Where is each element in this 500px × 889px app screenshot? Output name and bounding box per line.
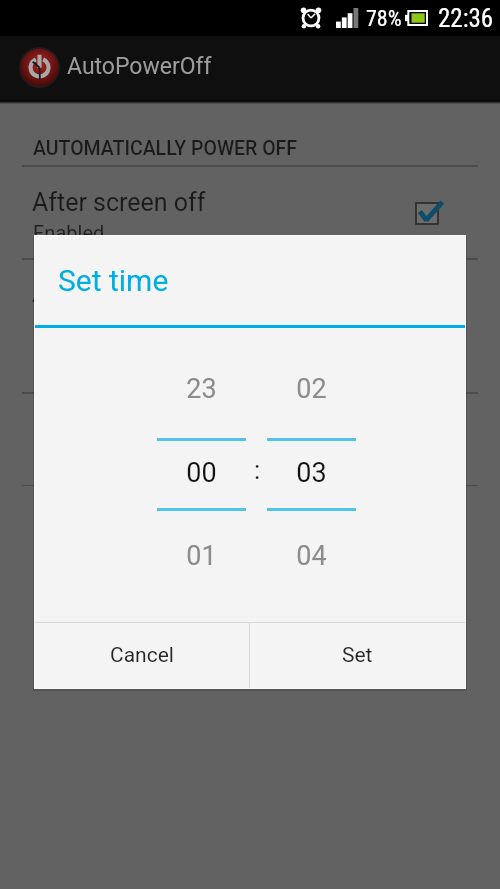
button[interactable]: After screen off enabled — [405, 189, 453, 237]
staticText: 02 — [267, 373, 356, 405]
staticText: Cancel — [110, 643, 174, 668]
button[interactable]: After screen off — [0, 167, 500, 258]
staticText: AutoPowerOff — [67, 53, 212, 80]
staticText: : — [254, 455, 261, 485]
staticText: 00 — [157, 457, 246, 489]
staticText: 04 — [267, 540, 356, 572]
button[interactable]: After screen off delay — [0, 260, 500, 392]
staticText: After screen off — [32, 188, 206, 217]
staticText: AUTOMATICALLY POWER OFF — [33, 137, 298, 160]
staticText: 01 — [157, 540, 246, 572]
staticText: Enabled — [33, 221, 105, 244]
staticText: 23 — [157, 373, 246, 405]
button[interactable]: Set — [250, 623, 465, 688]
staticText: 78% — [366, 6, 402, 32]
staticText: 03 — [267, 457, 356, 489]
staticText: After screen off delay — [32, 279, 271, 308]
staticText: Set — [342, 643, 373, 668]
staticText: 22:36 — [438, 4, 494, 33]
staticText: Set time — [58, 263, 169, 298]
button[interactable] — [0, 394, 500, 485]
button[interactable]: Cancel — [35, 623, 249, 688]
